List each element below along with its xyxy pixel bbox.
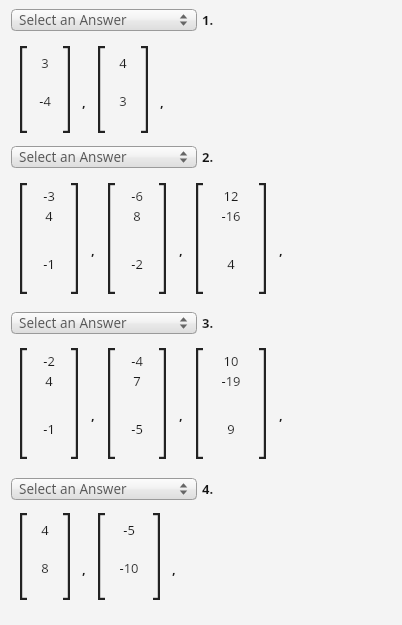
staticText: 10 (203, 352, 259, 370)
button[interactable]: Select an Answer (11, 478, 197, 500)
staticText: Select an Answer (19, 11, 127, 29)
staticText: , (179, 241, 183, 259)
staticText: 4 (27, 207, 71, 225)
staticText: , (172, 560, 176, 578)
staticText: -1 (27, 255, 71, 273)
staticText: -4 (115, 352, 159, 370)
staticText: 4 (27, 372, 71, 390)
staticText: 8 (115, 207, 159, 225)
staticText: , (279, 241, 283, 259)
staticText: Select an Answer (19, 314, 127, 332)
staticText: , (91, 241, 95, 259)
staticText: 9 (203, 420, 259, 438)
staticText: 3 (27, 54, 63, 72)
staticText: 4. (202, 480, 214, 498)
staticText: 4 (27, 521, 63, 539)
staticText: -3 (27, 187, 71, 205)
staticText: , (91, 406, 95, 424)
staticText: , (82, 93, 86, 111)
staticText: 4 (105, 54, 141, 72)
staticText: -1 (27, 420, 71, 438)
staticText: -10 (105, 559, 153, 577)
staticText: 1. (202, 11, 214, 29)
staticText: -5 (105, 521, 153, 539)
staticText: , (82, 560, 86, 578)
staticText: , (179, 406, 183, 424)
staticText: Select an Answer (19, 480, 127, 498)
button[interactable]: Select an Answer (11, 9, 197, 31)
staticText: -4 (27, 92, 63, 110)
staticText: Select an Answer (19, 148, 127, 166)
staticText: 3 (105, 92, 141, 110)
staticText: , (160, 93, 164, 111)
staticText: -16 (203, 207, 259, 225)
staticText: 12 (203, 187, 259, 205)
button[interactable]: Select an Answer (11, 312, 197, 334)
button[interactable]: Select an Answer (11, 146, 197, 168)
staticText: , (279, 406, 283, 424)
staticText: 8 (27, 559, 63, 577)
staticText: 3. (202, 314, 214, 332)
staticText: -19 (203, 372, 259, 390)
staticText: -2 (27, 352, 71, 370)
staticText: 2. (202, 148, 214, 166)
staticText: -6 (115, 187, 159, 205)
staticText: 7 (115, 372, 159, 390)
staticText: -2 (115, 255, 159, 273)
staticText: -5 (115, 420, 159, 438)
staticText: 4 (203, 255, 259, 273)
